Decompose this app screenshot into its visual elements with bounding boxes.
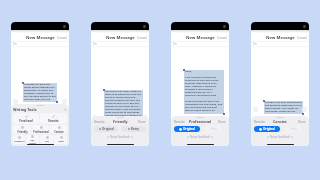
staticText: Professional (33, 130, 49, 133)
staticText: Concise (54, 130, 64, 133)
staticText: Share Feedback (270, 135, 290, 139)
staticText: Share Feedback (110, 135, 130, 139)
staticText: Original (183, 127, 195, 131)
button[interactable]: Concise (50, 125, 67, 134)
button[interactable]: Previous suggestion (93, 115, 98, 120)
staticText: Friendly (113, 119, 128, 124)
staticText: Hi there! I'm busy researching the great… (265, 101, 302, 113)
button[interactable]: Rewrite (254, 120, 265, 124)
button[interactable]: Cancel (137, 36, 147, 40)
staticText: New Message (266, 35, 295, 41)
button[interactable]: Rewrite (174, 120, 185, 124)
button[interactable]: Done (138, 120, 146, 124)
staticText: Retry (131, 127, 139, 131)
button[interactable]: Retry (121, 126, 146, 132)
staticText: Friendly (17, 130, 28, 133)
staticText: Hello, I am currently engaged in researc… (185, 70, 223, 112)
staticText: Rewrite (48, 119, 59, 123)
staticText: New Message (186, 35, 215, 41)
button[interactable]: Retry (205, 126, 222, 132)
button[interactable]: Previous suggestion (13, 99, 18, 104)
button[interactable]: Key Points (26, 135, 39, 144)
staticText: Table (58, 140, 64, 143)
staticText: Retry (290, 127, 297, 131)
staticText: Hey there! I'm super happy to report I'm… (105, 90, 142, 117)
button[interactable]: Rewrite (94, 120, 105, 124)
staticText: Writing Tools (13, 107, 37, 112)
staticText: I wanted to reach out about being awarde… (24, 83, 56, 101)
button[interactable]: Next suggestion (302, 107, 307, 112)
button[interactable]: Cancel (297, 36, 307, 40)
staticText: Original (263, 127, 275, 131)
button[interactable]: Rewrite (40, 113, 67, 124)
staticText: Proofread (19, 119, 33, 123)
button[interactable]: Friendly (13, 125, 31, 134)
button[interactable]: Cancel (57, 36, 67, 40)
button[interactable]: Summary (13, 135, 25, 144)
button[interactable]: Original (254, 126, 280, 132)
staticText: Share Feedback (190, 135, 210, 139)
staticText: Key Points (29, 139, 36, 144)
staticText: New Message (106, 35, 135, 41)
staticText: Professional (189, 119, 212, 124)
button[interactable]: Original (174, 126, 200, 132)
button[interactable]: Professional (32, 125, 49, 134)
button[interactable]: Previous suggestion (253, 107, 258, 112)
staticText: To: (93, 42, 98, 46)
staticText: Summary (14, 140, 25, 143)
button[interactable]: Retry (285, 126, 302, 132)
button[interactable]: Next suggestion (62, 99, 67, 104)
staticText: Retry (210, 127, 217, 131)
staticText: Original (102, 127, 114, 131)
button[interactable]: Done (218, 120, 226, 124)
staticText: To: (253, 42, 258, 46)
staticText: Concise (273, 119, 287, 124)
button[interactable]: List (40, 135, 53, 144)
button[interactable]: Close (64, 108, 67, 111)
button[interactable]: Table (54, 135, 67, 144)
staticText: List (45, 140, 49, 143)
staticText: To: (13, 42, 18, 46)
button[interactable]: Cancel (217, 36, 227, 40)
button[interactable]: Original (94, 126, 118, 132)
staticText: New Message (26, 35, 55, 41)
button[interactable]: Done (298, 120, 306, 124)
button[interactable]: Next suggestion (142, 115, 147, 120)
staticText: To: (173, 42, 178, 46)
button[interactable]: Proofread (13, 113, 39, 124)
